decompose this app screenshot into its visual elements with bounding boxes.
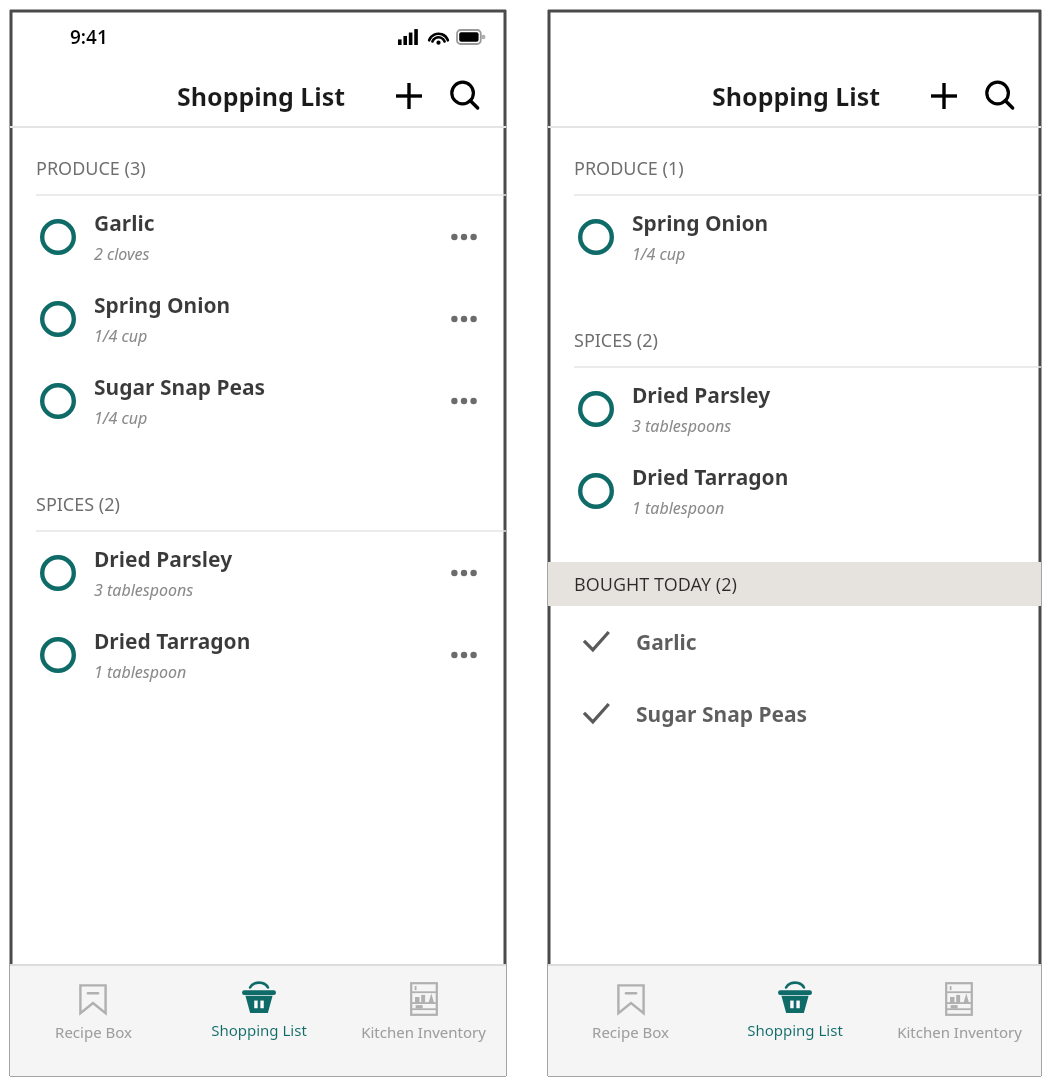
button[interactable]: Mark Dried Tarragon bought [36, 633, 80, 677]
button[interactable]: More options for Sugar Snap Peas [442, 379, 486, 423]
button[interactable]: Search [979, 75, 1021, 117]
button[interactable]: Search [444, 75, 486, 117]
staticText: Sugar Snap Peas [94, 373, 266, 402]
staticText: 1 tablespoon [632, 497, 725, 519]
button[interactable]: Mark Dried Tarragon bought [548, 450, 1041, 532]
staticText: 2 cloves [94, 243, 150, 265]
staticText: PRODUCE (1) [574, 156, 684, 181]
button[interactable]: Mark Spring Onion bought [36, 297, 80, 341]
button[interactable]: Mark Dried Parsley bought [36, 551, 80, 595]
staticText: Dried Tarragon [632, 463, 789, 492]
staticText: SPICES (2) [36, 492, 120, 517]
staticText: Recipe Box [55, 1022, 132, 1042]
button[interactable]: Mark Spring Onion bought [10, 278, 506, 360]
staticText: 1/4 cup [94, 407, 148, 429]
button[interactable]: More options for Garlic [442, 215, 486, 259]
staticText: Kitchen Inventory [361, 1022, 486, 1042]
staticText: Garlic [636, 628, 697, 657]
button[interactable]: Add item [923, 75, 965, 117]
button[interactable]: More options for Spring Onion [442, 297, 486, 341]
staticText: Shopping List [177, 79, 346, 113]
staticText: 3 tablespoons [94, 579, 194, 601]
button[interactable]: Shopping List [713, 966, 877, 1040]
staticText: Spring Onion [632, 209, 769, 238]
button[interactable]: More options for Dried Parsley [442, 551, 486, 595]
staticText: 9:41 [70, 24, 108, 50]
button[interactable]: Mark Spring Onion bought [574, 215, 618, 259]
staticText: BOUGHT TODAY (2) [574, 572, 737, 597]
button[interactable]: Mark Dried Tarragon bought [574, 469, 618, 513]
staticText: 1/4 cup [632, 243, 686, 265]
staticText: Kitchen Inventory [897, 1022, 1022, 1042]
button[interactable]: Mark Dried Tarragon bought [10, 614, 506, 696]
staticText: 1/4 cup [94, 325, 148, 347]
button[interactable]: Mark Sugar Snap Peas bought [36, 379, 80, 423]
button[interactable]: Recipe Box [10, 966, 176, 1042]
button[interactable]: Mark Spring Onion bought [548, 196, 1041, 278]
button[interactable]: Mark Garlic bought [36, 215, 80, 259]
staticText: Shopping List [211, 1020, 307, 1040]
button[interactable]: Shopping List [176, 966, 341, 1040]
button[interactable]: Mark Dried Parsley bought [548, 368, 1041, 450]
staticText: 1 tablespoon [94, 661, 187, 683]
staticText: Dried Tarragon [94, 627, 251, 656]
button[interactable]: Kitchen Inventory [877, 966, 1041, 1042]
button[interactable]: Mark Sugar Snap Peas bought [10, 360, 506, 442]
staticText: Recipe Box [592, 1022, 669, 1042]
staticText: 3 tablespoons [632, 415, 732, 437]
staticText: Dried Parsley [94, 545, 233, 574]
button[interactable]: Mark Dried Parsley bought [574, 387, 618, 431]
button[interactable]: Kitchen Inventory [341, 966, 506, 1042]
button[interactable]: Mark Garlic bought [10, 196, 506, 278]
staticText: Shopping List [747, 1020, 843, 1040]
staticText: Shopping List [712, 79, 881, 113]
button[interactable]: Garlic [548, 606, 1041, 678]
staticText: PRODUCE (3) [36, 156, 146, 181]
staticText: Sugar Snap Peas [636, 700, 808, 729]
button[interactable]: Recipe Box [548, 966, 713, 1042]
staticText: Dried Parsley [632, 381, 771, 410]
staticText: Spring Onion [94, 291, 231, 320]
staticText: SPICES (2) [574, 328, 658, 353]
button[interactable]: More options for Dried Tarragon [442, 633, 486, 677]
button[interactable]: Add item [388, 75, 430, 117]
staticText: Garlic [94, 209, 155, 238]
button[interactable]: Mark Dried Parsley bought [10, 532, 506, 614]
button[interactable]: Sugar Snap Peas [548, 678, 1041, 750]
